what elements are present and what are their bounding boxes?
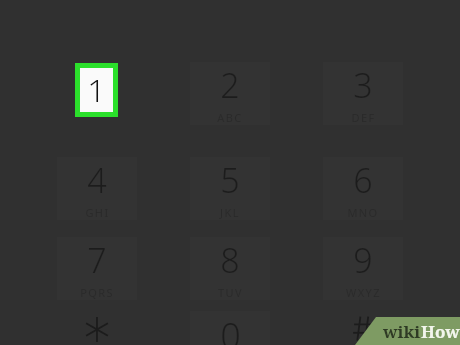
button[interactable]: Star: [57, 313, 137, 345]
button[interactable]: 8: [190, 237, 270, 300]
staticText: 9: [353, 237, 373, 283]
staticText: 5: [220, 157, 240, 203]
staticText: 3: [353, 62, 373, 108]
staticText: 4: [87, 157, 107, 203]
staticText: 1: [87, 68, 106, 112]
staticText: 6: [353, 157, 373, 203]
staticText: 2: [220, 62, 240, 108]
staticText: 0: [220, 311, 241, 345]
staticText: 8: [220, 237, 240, 283]
button[interactable]: Pound: [323, 313, 403, 345]
button[interactable]: 0: [190, 311, 270, 345]
staticText: 7: [87, 237, 107, 283]
button[interactable]: 1: [75, 63, 118, 117]
staticText: How: [421, 320, 460, 343]
staticText: wiki: [383, 320, 421, 343]
